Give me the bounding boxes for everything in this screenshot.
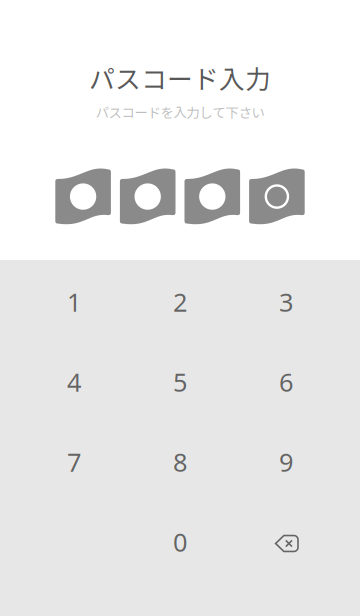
button[interactable]: 5 (127, 342, 233, 422)
staticText: 6 (279, 365, 293, 399)
button[interactable]: 7 (21, 422, 127, 502)
button[interactable]: 8 (127, 422, 233, 502)
button[interactable]: 6 (233, 342, 339, 422)
button[interactable]: 4 (21, 342, 127, 422)
staticText: パスコードを入力して下さい (95, 102, 264, 122)
button[interactable]: Delete (233, 502, 339, 582)
staticText: 8 (173, 445, 187, 479)
staticText: 0 (173, 525, 187, 559)
staticText: 4 (67, 365, 81, 399)
button[interactable]: 1 (21, 262, 127, 342)
button[interactable]: 3 (233, 262, 339, 342)
staticText: 7 (67, 445, 81, 479)
button[interactable]: 2 (127, 262, 233, 342)
staticText: 5 (173, 365, 187, 399)
staticText: 3 (279, 285, 293, 319)
staticText: 1 (67, 285, 81, 319)
staticText: パスコード入力 (89, 59, 271, 96)
button[interactable]: 0 (127, 502, 233, 582)
staticText: 9 (279, 445, 293, 479)
staticText: 2 (173, 285, 187, 319)
button[interactable]: 9 (233, 422, 339, 502)
